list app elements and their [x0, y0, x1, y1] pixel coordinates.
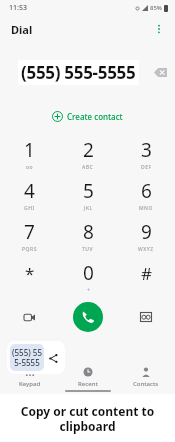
button[interactable]: Backspace: [145, 57, 175, 87]
button[interactable]: 7: [0, 215, 59, 256]
button[interactable]: Video call: [0, 299, 59, 335]
staticText: Dial: [11, 22, 33, 37]
staticText: 4: [24, 178, 35, 204]
button[interactable]: More options: [149, 19, 169, 39]
button[interactable]: 3: [117, 133, 175, 174]
staticText: Contacts: [133, 380, 159, 388]
button[interactable]: Create contact: [46, 108, 129, 125]
button[interactable]: #: [117, 256, 175, 297]
staticText: Copy or cut content to clipboard: [0, 403, 175, 434]
staticText: (555) 555-5555: [12, 347, 42, 368]
staticText: DEF: [141, 164, 152, 171]
staticText: Recent: [78, 380, 98, 388]
button[interactable]: 0: [59, 256, 117, 297]
button[interactable]: Voicemail: [117, 299, 175, 335]
staticText: *: [25, 262, 35, 285]
staticText: 85%: [150, 4, 162, 12]
staticText: #: [141, 262, 152, 285]
staticText: 7: [24, 219, 35, 245]
staticText: Create contact: [67, 111, 123, 122]
button[interactable]: 8: [59, 215, 117, 256]
staticText: MNO: [139, 205, 153, 212]
button[interactable]: Keypad: [0, 365, 59, 390]
staticText: GHI: [24, 205, 35, 212]
staticText: 5: [83, 178, 94, 204]
staticText: 1: [24, 137, 35, 163]
staticText: 9: [141, 219, 152, 245]
button[interactable]: Recent: [59, 365, 117, 390]
staticText: oo: [26, 164, 34, 171]
staticText: (555) 555-5555: [21, 61, 136, 84]
button[interactable]: Contacts: [117, 365, 175, 390]
staticText: WXYZ: [138, 246, 154, 253]
staticText: TUV: [82, 246, 94, 253]
button[interactable]: 5: [59, 174, 117, 215]
staticText: +: [87, 287, 91, 294]
staticText: ABC: [82, 164, 94, 171]
button[interactable]: 1: [0, 133, 59, 174]
button[interactable]: Call: [73, 302, 103, 332]
staticText: 11:53: [9, 3, 27, 13]
staticText: 6: [141, 178, 152, 204]
staticText: 3: [141, 137, 152, 163]
button[interactable]: 4: [0, 174, 59, 215]
button[interactable]: Share: [44, 349, 62, 367]
button[interactable]: *: [0, 256, 59, 297]
button[interactable]: 2: [59, 133, 117, 174]
button[interactable]: 9: [117, 215, 175, 256]
staticText: JKL: [84, 205, 93, 212]
staticText: 8: [83, 219, 94, 245]
staticText: 2: [83, 137, 94, 163]
staticText: PQRS: [22, 246, 37, 253]
staticText: 0: [83, 260, 94, 286]
button[interactable]: (555) 555-5555: [10, 344, 44, 371]
button[interactable]: 6: [117, 174, 175, 215]
staticText: Keypad: [19, 380, 41, 388]
